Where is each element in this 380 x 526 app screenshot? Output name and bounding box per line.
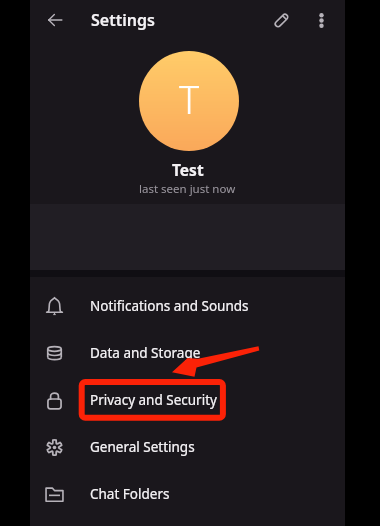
- staticText: last seen just now: [139, 181, 236, 197]
- button[interactable]: More options: [304, 3, 338, 37]
- staticText: Test: [172, 159, 204, 180]
- button[interactable]: Back: [38, 3, 72, 37]
- button[interactable]: Profile photo: [139, 51, 239, 151]
- staticText: T: [179, 73, 200, 125]
- button[interactable]: Edit: [264, 3, 298, 37]
- button[interactable]: Privacy and Security: [30, 376, 345, 423]
- staticText: Chat Folders: [90, 485, 170, 503]
- staticText: General Settings: [90, 438, 195, 456]
- button[interactable]: Data and Storage: [30, 329, 345, 376]
- staticText: Privacy and Security: [90, 391, 217, 409]
- button[interactable]: Notifications and Sounds: [30, 282, 345, 329]
- staticText: Data and Storage: [90, 344, 201, 362]
- staticText: Settings: [91, 9, 155, 31]
- button[interactable]: Chat Folders: [30, 470, 345, 517]
- button[interactable]: General Settings: [30, 423, 345, 470]
- staticText: Notifications and Sounds: [90, 297, 249, 315]
